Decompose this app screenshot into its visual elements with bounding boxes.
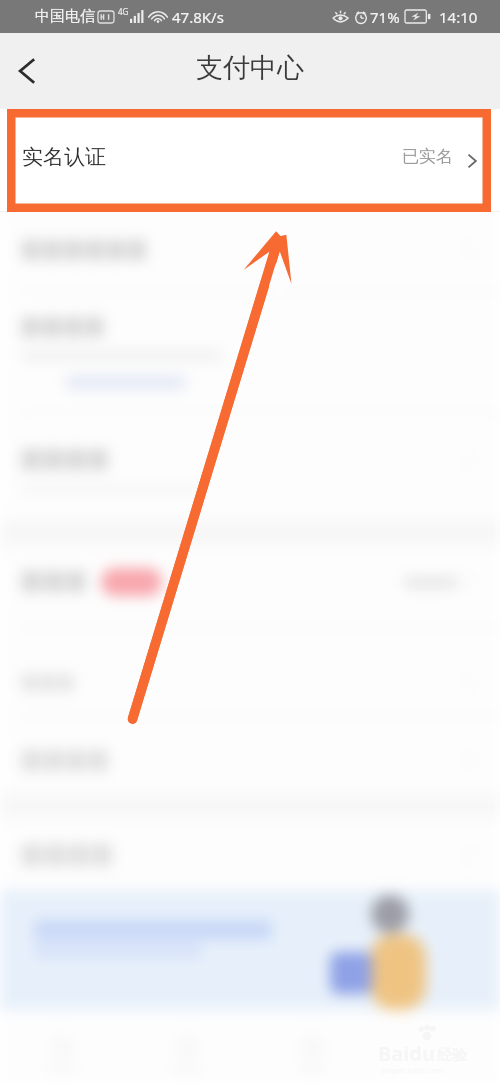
button[interactable]: 实名认证 [0,109,500,212]
staticText: 71% [370,7,400,27]
staticText: 4G [118,6,129,17]
staticText: 47.8K/s [172,7,224,27]
staticText: 14:10 [439,7,478,27]
staticText: 中国电信 [35,7,95,26]
staticText: 实名认证 [22,144,106,170]
staticText: 已实名 [402,146,453,167]
button[interactable]: Back [2,45,54,97]
staticText: 支付中心 [196,51,304,85]
